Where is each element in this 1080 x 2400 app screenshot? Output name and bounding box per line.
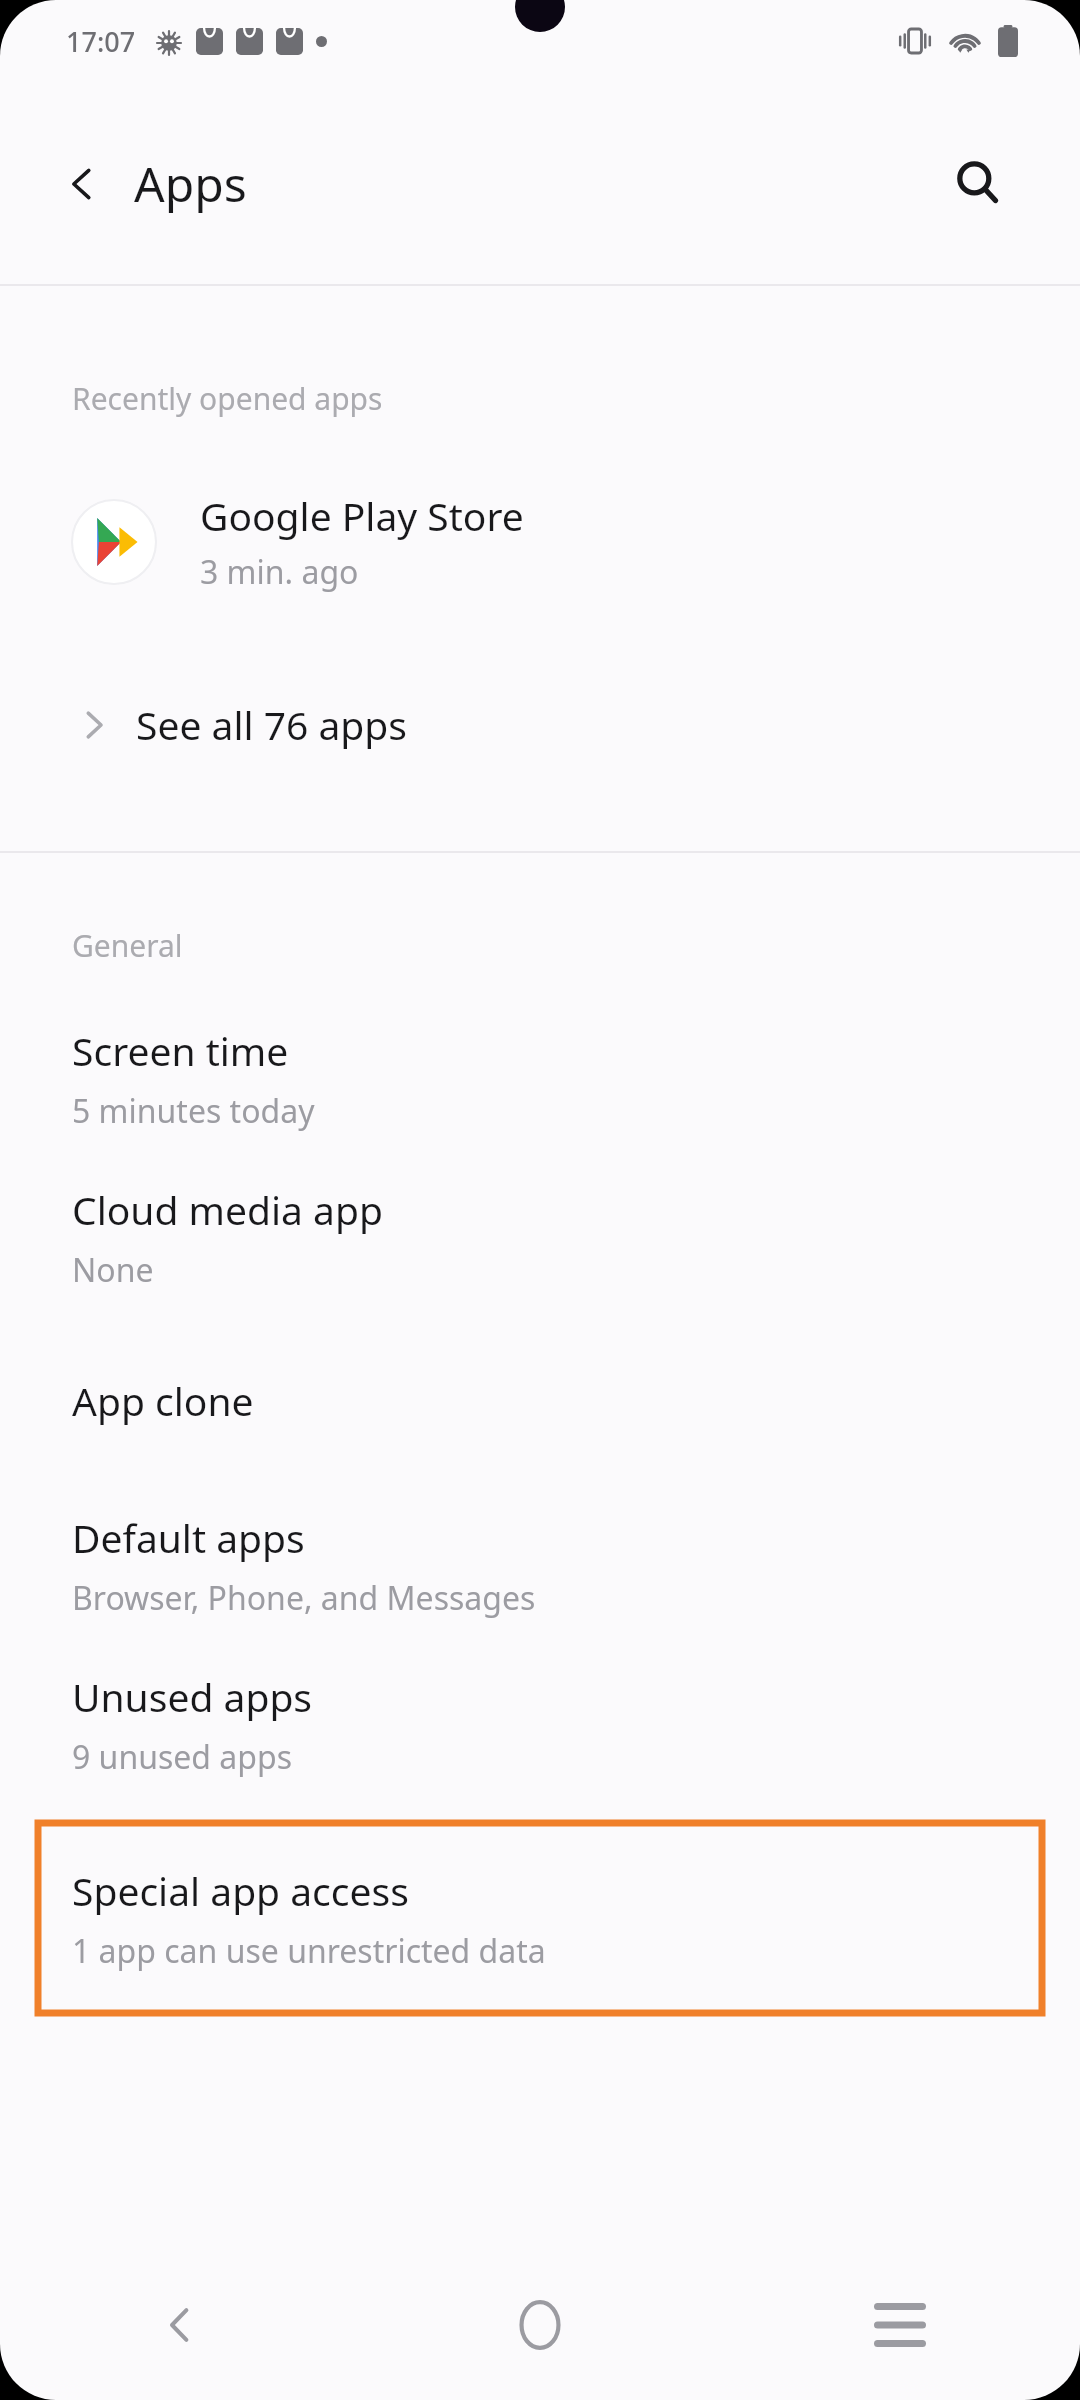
button[interactable]: Recent apps: [720, 2250, 1080, 2400]
staticText: Default apps: [72, 1511, 305, 1564]
other: Back: [52, 154, 112, 214]
staticText: Recently opened apps: [72, 378, 383, 419]
staticText: General: [72, 925, 183, 966]
staticText: App clone: [72, 1374, 254, 1427]
staticText: Google Play Store: [200, 489, 524, 542]
staticText: Special app access: [72, 1864, 409, 1917]
button[interactable]: Unused apps: [0, 1664, 1080, 1785]
button[interactable]: See all 76 apps: [0, 690, 1080, 759]
button[interactable]: Back: [52, 151, 247, 216]
button[interactable]: Search: [934, 139, 1022, 227]
staticText: 17:07: [66, 23, 136, 60]
staticText: Cloud media app: [72, 1183, 383, 1236]
button[interactable]: Special app access: [38, 1823, 1042, 2013]
staticText: Browser, Phone, and Messages: [72, 1576, 536, 1620]
button[interactable]: Cloud media app: [0, 1177, 1080, 1298]
staticText: Unused apps: [72, 1670, 313, 1723]
staticText: None: [72, 1248, 154, 1292]
button[interactable]: App clone: [0, 1368, 1080, 1433]
staticText: 5 minutes today: [72, 1089, 315, 1133]
button[interactable]: Home: [360, 2250, 720, 2400]
button[interactable]: Screen time: [0, 1018, 1080, 1139]
button[interactable]: Back: [0, 2250, 360, 2400]
staticText: Screen time: [72, 1024, 289, 1077]
staticText: 1 app can use unrestricted data: [72, 1929, 546, 1973]
staticText: See all 76 apps: [136, 698, 407, 751]
button[interactable]: Google Play Store: [0, 479, 1080, 604]
button[interactable]: Default apps: [0, 1505, 1080, 1626]
staticText: 9 unused apps: [72, 1735, 292, 1779]
staticText: Apps: [134, 151, 247, 216]
staticText: 3 min. ago: [200, 550, 359, 594]
